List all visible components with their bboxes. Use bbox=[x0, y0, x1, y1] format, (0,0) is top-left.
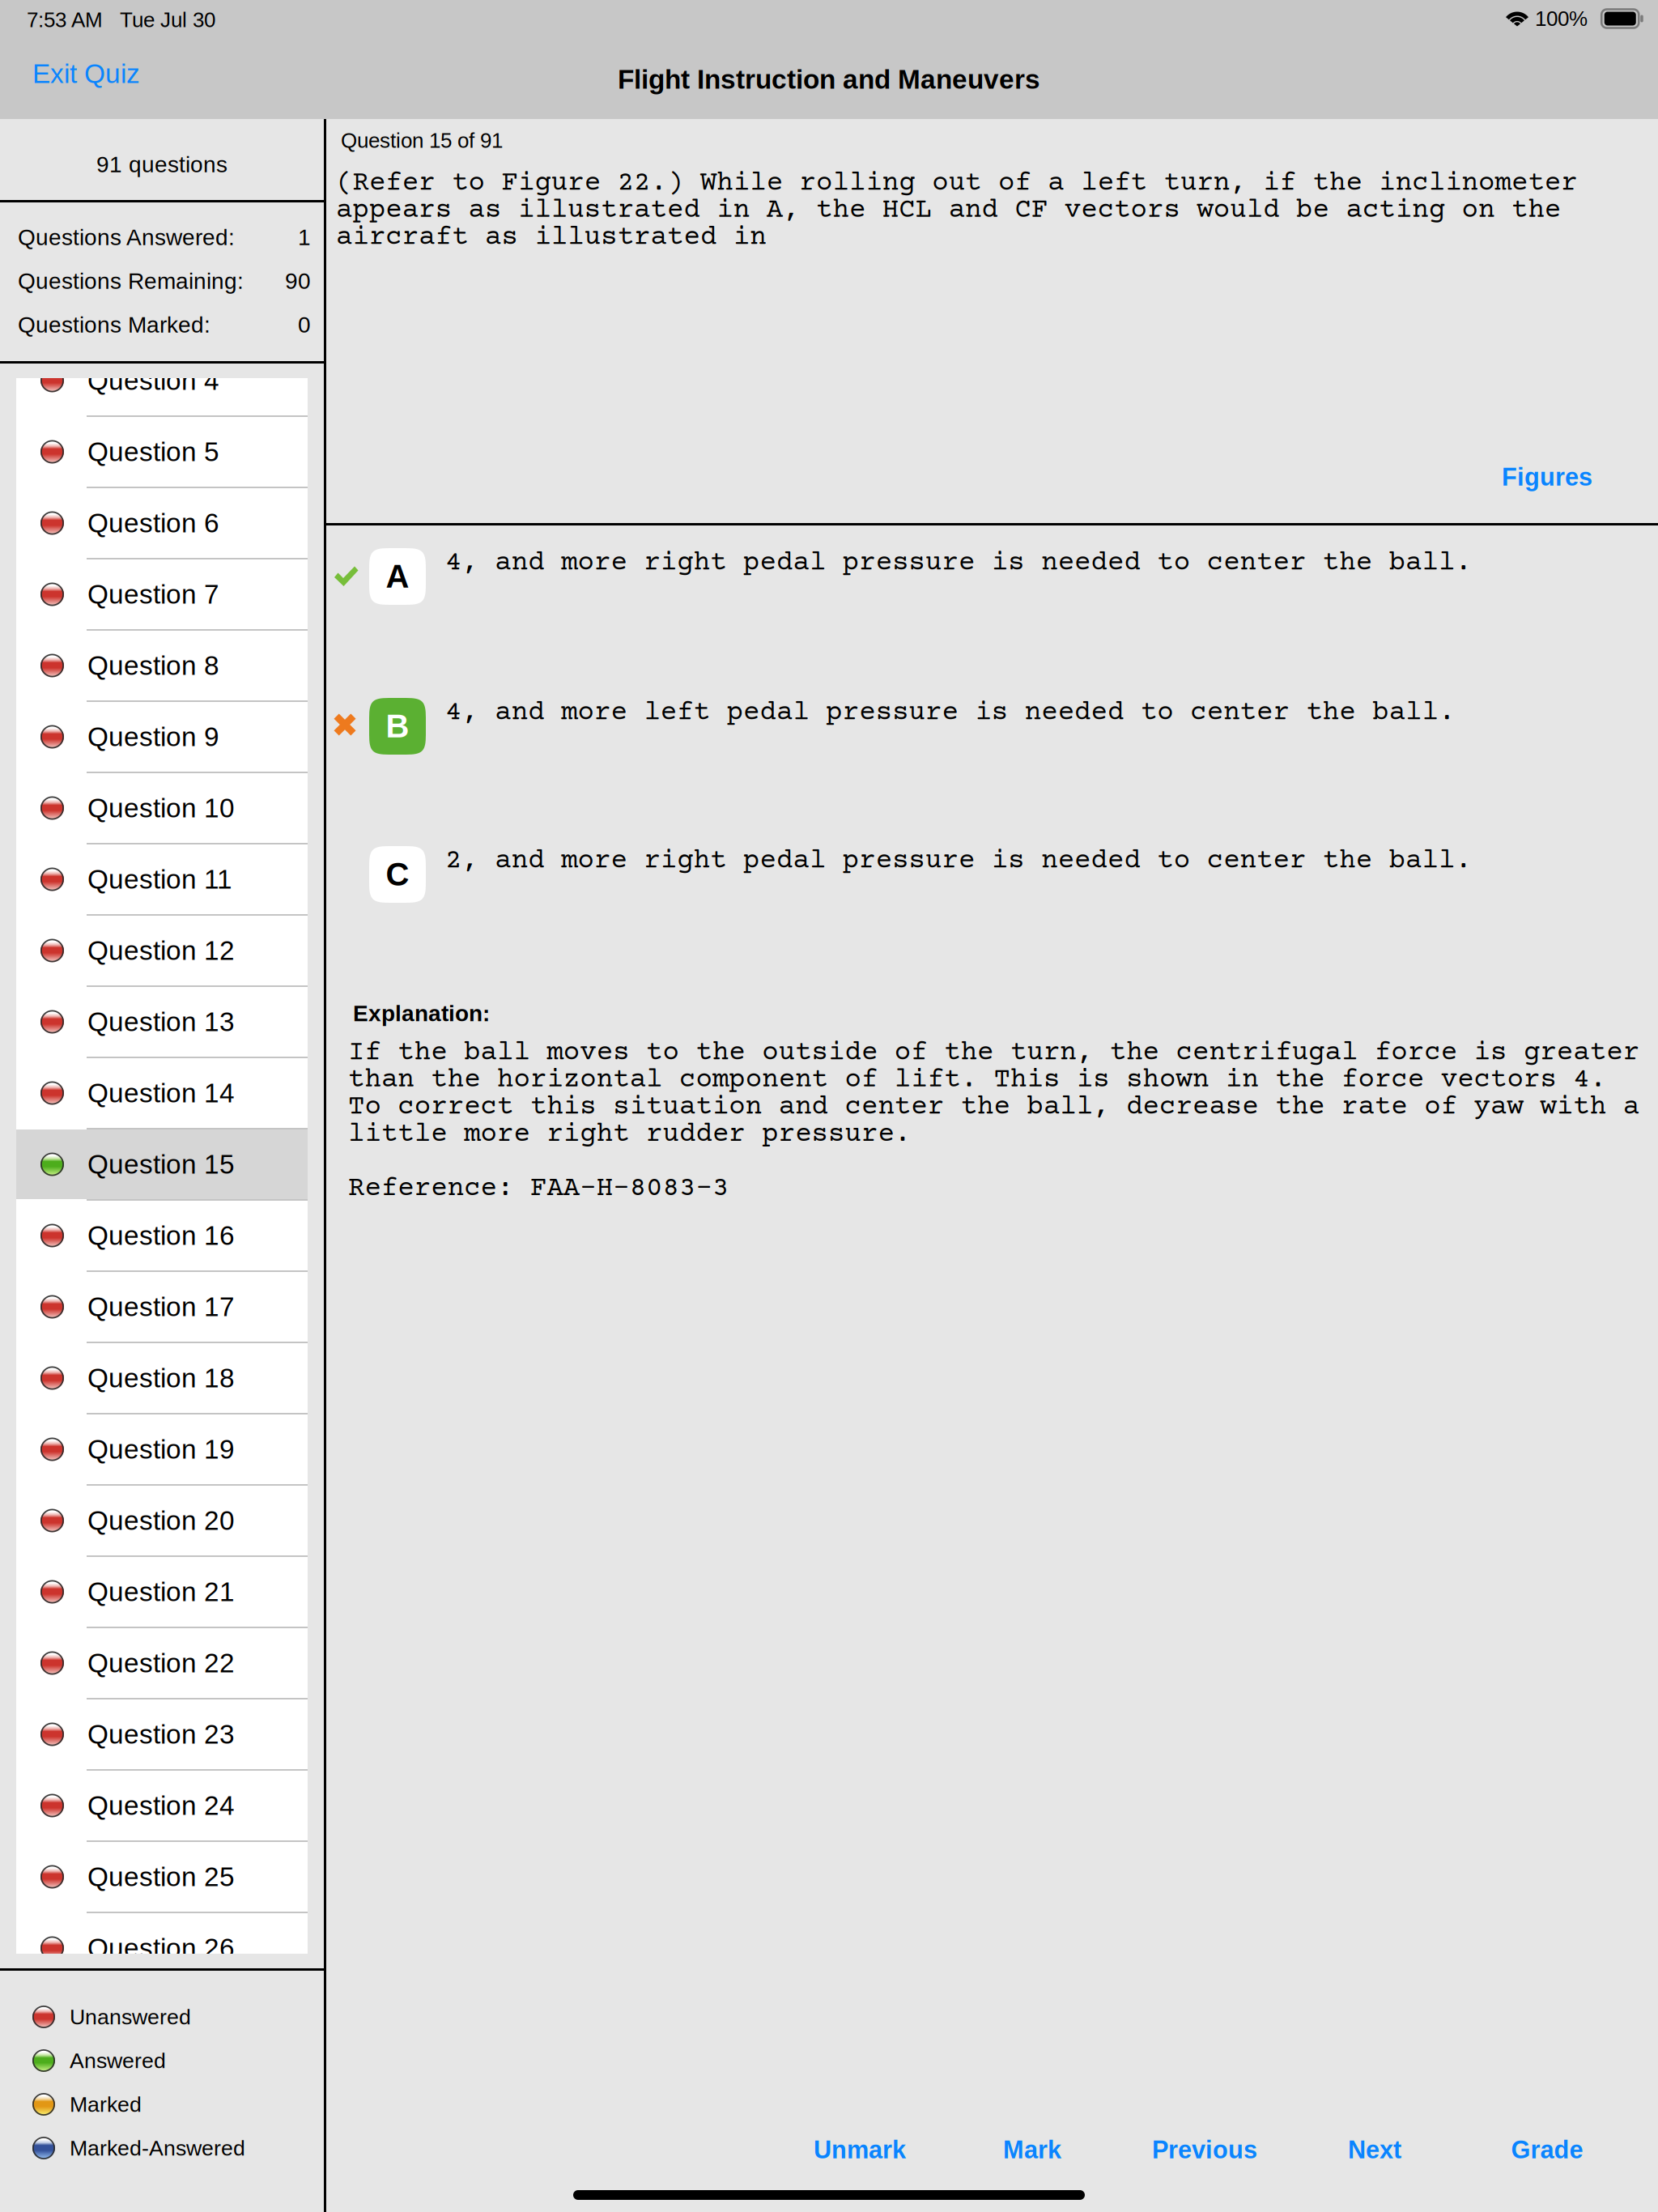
staticText: Question 25 bbox=[87, 1862, 235, 1892]
button[interactable]: Question 22 bbox=[16, 1628, 308, 1698]
staticText: Mark bbox=[1003, 2136, 1061, 2164]
staticText: Question 28 bbox=[87, 2075, 235, 2106]
staticText: Grade bbox=[1511, 2136, 1583, 2164]
button[interactable]: Question 23 bbox=[16, 1699, 308, 1769]
staticText: C bbox=[386, 856, 409, 893]
staticText: 2, and more right pedal pressure is need… bbox=[445, 848, 1471, 875]
button[interactable]: Question 27 bbox=[16, 1984, 308, 2054]
staticText: Explanation: bbox=[353, 1001, 490, 1026]
staticText: Question 14 bbox=[87, 1078, 235, 1108]
button[interactable]: Question 3 bbox=[16, 274, 308, 344]
button[interactable]: Question 26 bbox=[16, 1913, 308, 1983]
staticText: Question 5 bbox=[87, 437, 219, 467]
button[interactable]: Question 11 bbox=[16, 844, 308, 914]
staticText: 4, and more left pedal pressure is neede… bbox=[445, 700, 1455, 727]
staticText: Questions Remaining: bbox=[18, 268, 244, 294]
staticText: 1 bbox=[298, 225, 311, 250]
button[interactable]: Question 16 bbox=[16, 1201, 308, 1270]
staticText: Question 27 bbox=[87, 2004, 235, 2034]
staticText: Unmark bbox=[814, 2136, 906, 2164]
button[interactable]: Question 19 bbox=[16, 1414, 308, 1484]
staticText: Flight Instruction and Maneuvers bbox=[618, 64, 1040, 94]
staticText: Question 16 bbox=[87, 1220, 235, 1251]
staticText: 7:53 AM Tue Jul 30 bbox=[27, 8, 215, 32]
staticText: Marked-Answered bbox=[70, 2136, 245, 2160]
button[interactable]: Question 21 bbox=[16, 1557, 308, 1627]
button[interactable]: Question 8 bbox=[16, 631, 308, 700]
staticText: Question 19 bbox=[87, 1434, 235, 1464]
staticText: Question 13 bbox=[87, 1007, 235, 1037]
button[interactable]: Question 28 bbox=[16, 2056, 308, 2125]
staticText: Question 15 of 91 bbox=[341, 129, 503, 152]
button[interactable]: B bbox=[369, 698, 426, 755]
button[interactable]: Previous bbox=[1132, 2118, 1278, 2181]
button[interactable]: Question 13 bbox=[16, 987, 308, 1057]
button[interactable]: Question 9 bbox=[16, 702, 308, 772]
staticText: Figures bbox=[1502, 463, 1592, 491]
button[interactable]: Question 7 bbox=[16, 559, 308, 629]
staticText: Question 21 bbox=[87, 1577, 235, 1607]
button[interactable]: Exit Quiz bbox=[0, 47, 178, 100]
staticText: Exit Quiz bbox=[32, 59, 140, 89]
button[interactable]: Question 20 bbox=[16, 1486, 308, 1555]
button[interactable]: Figures bbox=[1478, 452, 1616, 502]
staticText: Question 9 bbox=[87, 722, 219, 752]
staticText: Next bbox=[1348, 2136, 1401, 2164]
staticText: Questions Marked: bbox=[18, 312, 210, 337]
staticText: 4, and more right pedal pressure is need… bbox=[445, 550, 1471, 577]
staticText: Answered bbox=[70, 2049, 166, 2073]
staticText: Question 15 bbox=[87, 1149, 235, 1179]
staticText: Question 6 bbox=[87, 508, 219, 538]
button[interactable]: Question 6 bbox=[16, 488, 308, 558]
staticText: A bbox=[386, 558, 409, 595]
button[interactable]: Next bbox=[1302, 2118, 1448, 2181]
staticText: Question 24 bbox=[87, 1790, 235, 1821]
staticText: Question 11 bbox=[87, 864, 232, 894]
staticText: 90 bbox=[285, 268, 311, 294]
staticText: If the ball moves to the outside of the … bbox=[348, 1040, 1639, 1203]
button[interactable]: Question 14 bbox=[16, 1058, 308, 1128]
staticText: Unanswered bbox=[70, 2005, 191, 2029]
button[interactable]: Grade bbox=[1474, 2118, 1620, 2181]
staticText: Question 12 bbox=[87, 935, 235, 966]
staticText: Question 4 bbox=[87, 365, 219, 396]
staticText: Question 8 bbox=[87, 650, 219, 681]
button[interactable]: Question 10 bbox=[16, 773, 308, 843]
button[interactable]: Question 25 bbox=[16, 1842, 308, 1912]
staticText: Question 7 bbox=[87, 579, 219, 609]
button[interactable]: C bbox=[369, 846, 426, 903]
button[interactable]: Question 24 bbox=[16, 1771, 308, 1840]
staticText: Previous bbox=[1152, 2136, 1257, 2164]
staticText: Questions Answered: bbox=[18, 225, 235, 250]
button[interactable]: Question 17 bbox=[16, 1272, 308, 1342]
staticText: Question 22 bbox=[87, 1648, 235, 1678]
staticText: 0 bbox=[298, 312, 311, 337]
staticText: Question 23 bbox=[87, 1719, 235, 1749]
staticText: Question 17 bbox=[87, 1292, 235, 1322]
button[interactable]: Question 5 bbox=[16, 417, 308, 487]
staticText: (Refer to Figure 22.) While rolling out … bbox=[336, 170, 1577, 251]
button[interactable]: A bbox=[369, 548, 426, 605]
button[interactable]: Mark bbox=[959, 2118, 1105, 2181]
button[interactable]: Question 12 bbox=[16, 916, 308, 985]
staticText: Question 26 bbox=[87, 1933, 235, 1963]
button[interactable]: Question 4 bbox=[16, 346, 308, 415]
staticText: Question 20 bbox=[87, 1505, 235, 1536]
button[interactable]: Unmark bbox=[787, 2118, 933, 2181]
staticText: Marked bbox=[70, 2092, 142, 2116]
staticText: Question 3 bbox=[87, 294, 219, 324]
staticText: 91 questions bbox=[96, 152, 227, 177]
button[interactable]: Question 15 bbox=[16, 1129, 308, 1199]
staticText: B bbox=[386, 708, 409, 744]
staticText: Question 18 bbox=[87, 1363, 235, 1393]
button[interactable]: Question 18 bbox=[16, 1343, 308, 1413]
staticText: Question 10 bbox=[87, 793, 235, 823]
staticText: 100% bbox=[1535, 7, 1588, 30]
